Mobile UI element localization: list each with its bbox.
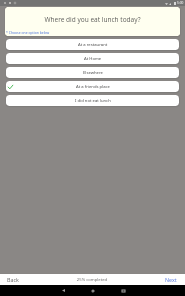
button[interactable]: I did not eat lunch [6,95,179,106]
staticText: At a restaurant [78,42,108,48]
button[interactable]: Next [162,274,185,285]
staticText: 5:00 [177,1,184,5]
button[interactable]: Elsewhere [6,67,179,78]
staticText: * Choose one option below [6,30,50,35]
staticText: At a friends place [76,84,110,90]
staticText: Back [7,276,19,283]
staticText: Next [165,276,177,283]
staticText: Elsewhere [83,70,103,76]
button[interactable]: Back [48,285,78,296]
button[interactable]: At a restaurant [6,39,179,50]
staticText: At Home [84,56,102,62]
staticText: 25% completed [22,277,162,283]
button[interactable]: At a friends place [6,81,179,92]
staticText: I did not eat lunch [75,98,111,104]
button[interactable]: At Home [6,53,179,64]
button[interactable]: Recent apps [108,285,138,296]
button[interactable]: Back [0,274,22,285]
staticText: Where did you eat lunch today? [5,15,180,24]
button[interactable]: Home [78,285,108,296]
